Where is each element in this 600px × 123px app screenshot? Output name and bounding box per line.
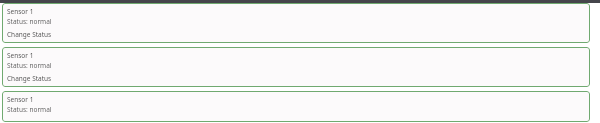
staticText: Sensor 1 bbox=[7, 51, 34, 60]
staticText: Sensor 1 bbox=[7, 7, 34, 16]
staticText: Status: normal bbox=[7, 17, 52, 26]
staticText: Change Status bbox=[7, 74, 52, 83]
button[interactable]: Sensor 1 bbox=[2, 3, 590, 43]
button[interactable]: Sensor 1 bbox=[2, 47, 590, 87]
button[interactable]: Change Status bbox=[7, 30, 52, 39]
staticText: Status: normal bbox=[7, 105, 52, 114]
staticText: Change Status bbox=[7, 30, 52, 39]
staticText: Sensor 1 bbox=[7, 95, 34, 104]
button[interactable]: Sensor 1 bbox=[2, 91, 590, 122]
staticText: Status: normal bbox=[7, 61, 52, 70]
button[interactable]: Change Status bbox=[7, 74, 52, 83]
